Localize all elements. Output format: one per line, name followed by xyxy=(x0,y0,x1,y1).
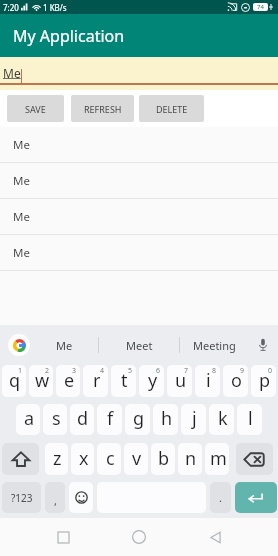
button[interactable]: DELETE xyxy=(139,95,204,122)
staticText: 3 xyxy=(72,366,77,376)
button[interactable]: ?123 xyxy=(2,482,41,513)
button[interactable]: z xyxy=(45,443,68,475)
staticText: My Application xyxy=(13,25,125,47)
staticText: 8 xyxy=(212,366,217,376)
button[interactable]: Meeting xyxy=(180,325,248,365)
staticText: Me xyxy=(13,137,30,153)
button[interactable]: r xyxy=(83,365,108,397)
staticText: 7:20 xyxy=(3,2,19,13)
button[interactable]: Me xyxy=(0,127,278,163)
button[interactable]: i xyxy=(195,365,220,397)
staticText: v xyxy=(132,446,142,471)
staticText: 7 xyxy=(184,366,189,376)
button[interactable]: REFRESH xyxy=(71,95,134,122)
staticText: d xyxy=(77,406,89,431)
button[interactable]: Home xyxy=(101,518,177,556)
button[interactable]: Backspace xyxy=(236,443,273,475)
staticText: o xyxy=(231,368,242,393)
button[interactable]: e xyxy=(56,365,80,397)
staticText: t xyxy=(121,368,128,393)
button[interactable]: j xyxy=(181,404,206,435)
button[interactable]: k xyxy=(209,404,234,435)
button[interactable]: n xyxy=(178,443,202,475)
button[interactable]: g xyxy=(125,404,150,435)
button[interactable]: v xyxy=(124,443,148,475)
button[interactable]: d xyxy=(70,404,94,435)
staticText: z xyxy=(53,446,62,471)
button[interactable]: o xyxy=(223,365,248,397)
button[interactable]: Recents xyxy=(25,518,101,556)
staticText: . xyxy=(219,490,222,505)
staticText: a xyxy=(24,406,35,431)
staticText: 74 xyxy=(257,3,264,11)
staticText: 1 xyxy=(18,366,23,376)
staticText: 4 xyxy=(100,366,105,376)
button[interactable]: p xyxy=(251,365,276,397)
button[interactable]: Me xyxy=(0,57,278,90)
staticText: i xyxy=(206,368,211,393)
button[interactable]: u xyxy=(167,365,192,397)
button[interactable]: s xyxy=(43,404,67,435)
staticText: k xyxy=(218,406,228,431)
staticText: q xyxy=(9,368,21,393)
button[interactable]: Google Search xyxy=(0,325,38,365)
staticText: s xyxy=(52,406,61,431)
button[interactable]: Emoji xyxy=(69,482,93,513)
button[interactable]: h xyxy=(153,404,178,435)
staticText: DELETE xyxy=(156,103,188,115)
staticText: n xyxy=(185,446,197,471)
button[interactable]: Me xyxy=(0,199,278,235)
staticText: w xyxy=(35,368,50,393)
staticText: p xyxy=(259,368,271,393)
staticText: 9 xyxy=(240,366,245,376)
button[interactable]: Shift xyxy=(2,443,39,475)
staticText: f xyxy=(107,406,114,431)
staticText: 2 xyxy=(45,366,50,376)
button[interactable]: Voice input xyxy=(248,325,278,365)
button[interactable]: a xyxy=(16,404,40,435)
staticText: Meet xyxy=(126,338,153,353)
button[interactable]: y xyxy=(139,365,164,397)
button[interactable]: q xyxy=(2,365,26,397)
staticText: Me xyxy=(13,245,30,261)
staticText: 5 xyxy=(128,366,133,376)
button[interactable]: f xyxy=(97,404,122,435)
staticText: ?123 xyxy=(11,491,33,505)
button[interactable]: c xyxy=(97,443,121,475)
button[interactable]: t xyxy=(111,365,136,397)
button[interactable]: Me xyxy=(0,235,278,271)
staticText: Me xyxy=(3,65,21,81)
button[interactable]: l xyxy=(237,404,262,435)
button[interactable]: SAVE xyxy=(7,95,64,122)
button[interactable]: x xyxy=(71,443,94,475)
button[interactable]: Meet xyxy=(99,325,179,365)
button[interactable]: Me xyxy=(38,325,90,365)
button[interactable]: b xyxy=(151,443,175,475)
staticText: y xyxy=(148,368,158,393)
staticText: , xyxy=(54,493,57,508)
button[interactable]: Enter xyxy=(235,482,277,513)
staticText: x xyxy=(79,446,89,471)
button[interactable]: w xyxy=(29,365,53,397)
staticText: g xyxy=(133,406,145,431)
staticText: h xyxy=(161,406,173,431)
button[interactable]: Back xyxy=(177,518,253,556)
button[interactable]: m xyxy=(205,443,229,475)
button[interactable]: Me xyxy=(0,163,278,199)
staticText: SAVE xyxy=(25,103,46,115)
staticText: 0 xyxy=(268,366,273,376)
staticText: REFRESH xyxy=(84,103,122,115)
staticText: Me xyxy=(13,209,30,225)
staticText: 1 KB/s xyxy=(43,2,67,13)
staticText: 6 xyxy=(156,366,161,376)
staticText: b xyxy=(158,446,170,471)
button[interactable]: , xyxy=(45,482,65,513)
staticText: Me xyxy=(13,173,30,189)
staticText: r xyxy=(93,368,101,393)
button[interactable]: . xyxy=(210,482,231,513)
staticText: l xyxy=(248,406,253,431)
staticText: Meeting xyxy=(193,338,236,353)
staticText: c xyxy=(106,446,115,471)
staticText: u xyxy=(175,368,187,393)
